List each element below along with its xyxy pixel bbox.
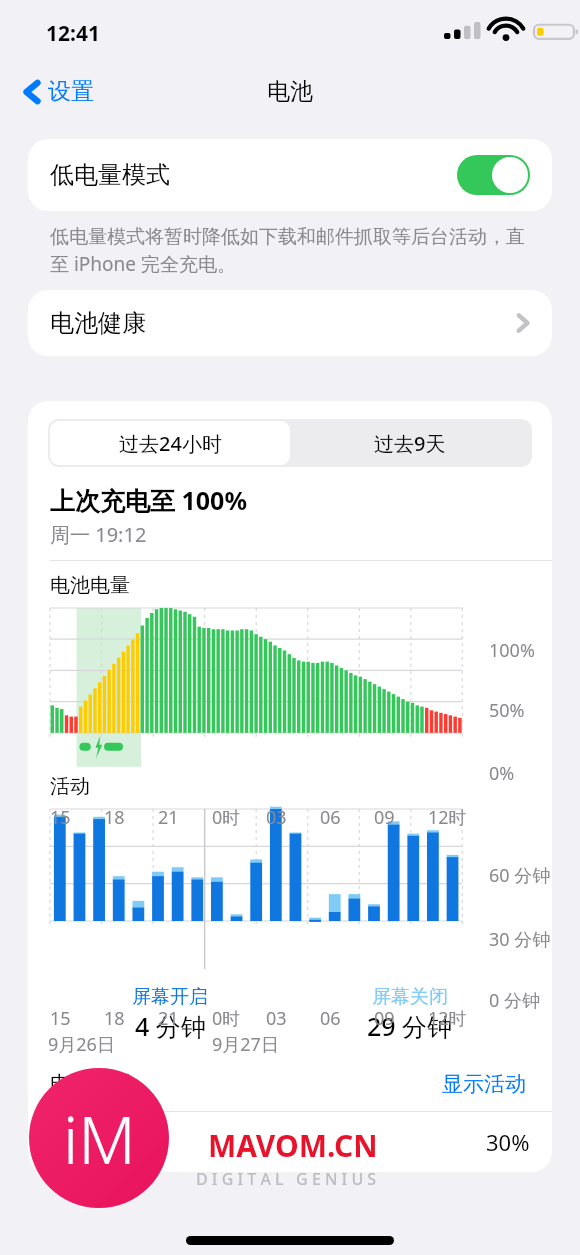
- staticText: 0时: [212, 805, 241, 830]
- staticText: 06: [320, 805, 341, 830]
- button[interactable]: 电池健康: [28, 290, 552, 356]
- button[interactable]: 设置: [16, 71, 100, 112]
- staticText: 屏幕关闭: [372, 985, 448, 1009]
- staticText: 21: [158, 1006, 179, 1031]
- button[interactable]: 低电量模式: [28, 139, 552, 211]
- staticText: 09: [374, 1006, 395, 1031]
- staticText: 29 分钟: [367, 1009, 453, 1043]
- staticText: 60 分钟: [489, 863, 551, 888]
- staticText: 18: [104, 1006, 125, 1031]
- button[interactable]: 王魔: [28, 1112, 552, 1172]
- button[interactable]: 显示活动: [438, 1067, 530, 1101]
- staticText: 设置: [48, 77, 94, 106]
- staticText: 15: [50, 1006, 71, 1031]
- staticText: 18: [104, 805, 125, 830]
- staticText: 周一 19:12: [50, 521, 147, 548]
- staticText: 12:41: [46, 19, 100, 48]
- staticText: 09: [374, 805, 395, 830]
- staticText: 电池电量: [50, 573, 130, 598]
- staticText: 电池: [267, 77, 313, 106]
- staticText: D I G I T A L G E N I U S: [196, 1168, 377, 1190]
- staticText: 06: [320, 1006, 341, 1031]
- staticText: 12时: [428, 1006, 467, 1031]
- staticText: 0 分钟: [489, 988, 540, 1013]
- button[interactable]: 过去24小时: [50, 421, 290, 465]
- staticText: 活动: [50, 774, 90, 799]
- button[interactable]: 过去9天: [290, 421, 530, 465]
- staticText: 过去24小时: [119, 430, 222, 457]
- staticText: 100%: [489, 638, 535, 663]
- staticText: 低电量模式: [50, 160, 170, 190]
- staticText: 低电量模式将暂时降低如下载和邮件抓取等后台活动，直至 iPhone 完全充电。: [50, 225, 530, 277]
- staticText: 03: [266, 805, 287, 830]
- staticText: 屏幕开启: [132, 985, 208, 1009]
- staticText: 21: [158, 805, 179, 830]
- staticText: iM: [63, 1093, 136, 1183]
- staticText: 9月27日: [212, 1032, 279, 1057]
- staticText: 03: [266, 1006, 287, 1031]
- staticText: 30%: [486, 1127, 530, 1157]
- staticText: 过去9天: [374, 430, 446, 457]
- staticText: MAVOM.CN: [208, 1125, 378, 1166]
- staticText: 显示活动: [442, 1071, 526, 1097]
- staticText: 30 分钟: [489, 927, 551, 952]
- staticText: 4 分钟: [135, 1009, 206, 1043]
- staticText: 50%: [489, 698, 525, 723]
- staticText: 电池健康: [50, 308, 146, 338]
- staticText: 9月26日: [48, 1032, 115, 1057]
- staticText: 上次充电至 100%: [50, 483, 247, 517]
- staticText: 王魔: [102, 1128, 148, 1157]
- staticText: 15: [50, 805, 71, 830]
- staticText: 电池用量: [50, 1071, 134, 1097]
- staticText: 0%: [489, 761, 515, 786]
- staticText: 0时: [212, 1006, 241, 1031]
- staticText: 12时: [428, 805, 467, 830]
